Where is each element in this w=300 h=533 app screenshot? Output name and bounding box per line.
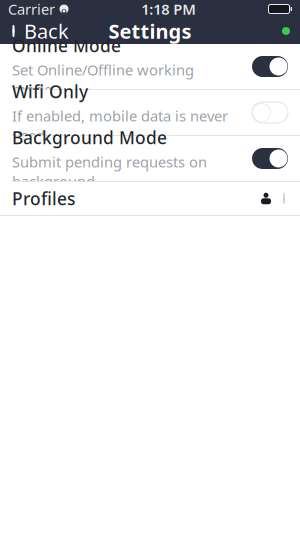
button[interactable]: Wifi Only	[0, 90, 300, 135]
staticText: Back	[24, 18, 69, 44]
staticText: Wifi Only	[12, 80, 88, 103]
button[interactable]: Background Mode	[0, 136, 300, 181]
staticText: Online Mode	[12, 34, 121, 57]
staticText: Carrier	[8, 0, 55, 19]
staticText: If enabled, mobile data is never used	[12, 106, 228, 145]
button[interactable]: Connection status	[274, 18, 298, 44]
staticText: Background Mode	[12, 126, 167, 149]
staticText: Submit pending requests on background	[12, 152, 207, 191]
staticText: Set Online/Offline working mode	[12, 60, 194, 99]
button[interactable]: Online Mode	[0, 44, 300, 89]
staticText: Settings	[108, 18, 191, 44]
staticText: Profiles	[12, 187, 75, 210]
button[interactable]: Back	[2, 18, 77, 44]
button[interactable]: Profiles	[0, 182, 300, 215]
staticText: 1:18 PM	[141, 0, 196, 19]
